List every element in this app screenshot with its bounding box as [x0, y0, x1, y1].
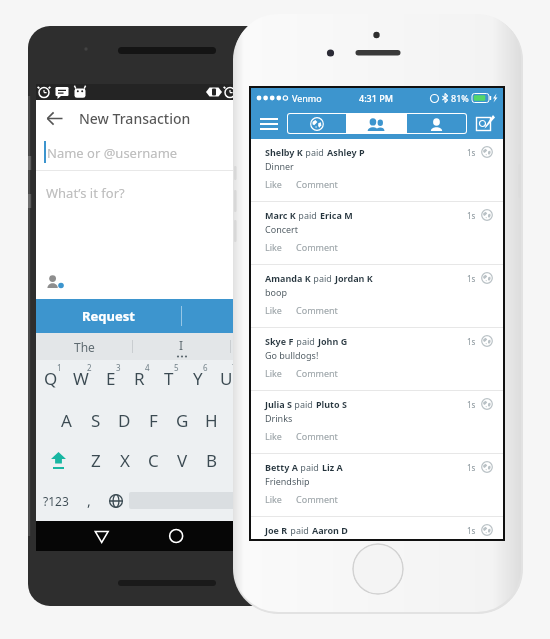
staticText: Q [44, 367, 58, 390]
button[interactable]: Marc K [251, 202, 503, 264]
button[interactable]: Z [81, 440, 110, 480]
button[interactable]: Request [36, 299, 181, 333]
staticText: 7 [232, 362, 237, 373]
button[interactable]: Comment [296, 493, 338, 505]
staticText: Comment [296, 493, 338, 505]
button[interactable]: H [197, 400, 226, 440]
staticText: Erica M [320, 209, 353, 221]
staticText: Pay [243, 307, 267, 325]
staticText: Aaron D [312, 524, 348, 536]
button[interactable]: G [168, 400, 197, 440]
staticText: W [73, 367, 89, 390]
staticText: H [205, 409, 218, 432]
staticText: Comment [296, 367, 338, 379]
staticText: B [206, 449, 218, 472]
button[interactable]: 8 [241, 360, 270, 400]
button[interactable]: Add people [47, 274, 65, 290]
button[interactable]: Delete [284, 440, 328, 480]
button[interactable]: 7 [212, 360, 241, 400]
button[interactable]: K [255, 400, 284, 440]
staticText: 1s [467, 525, 476, 536]
button[interactable]: X [110, 440, 139, 480]
button[interactable]: 9 [270, 360, 299, 400]
button[interactable]: B [197, 440, 226, 480]
button[interactable]: Amanda K [251, 265, 503, 327]
button[interactable]: L [284, 400, 313, 440]
button[interactable]: Shelby K [251, 139, 503, 201]
button[interactable]: S [81, 400, 110, 440]
button[interactable]: 5 [154, 360, 183, 400]
button[interactable]: Back [36, 100, 72, 136]
button[interactable]: F [139, 400, 168, 440]
button[interactable]: V [168, 440, 197, 480]
button[interactable]: Joe R [251, 517, 503, 539]
button[interactable]: Shift [36, 440, 81, 480]
button[interactable]: Skye F [251, 328, 503, 390]
button[interactable]: Like [265, 367, 282, 379]
button[interactable]: Like [265, 430, 282, 442]
staticText: G [176, 409, 189, 432]
staticText: ?123 [43, 493, 69, 509]
button[interactable]: Like [265, 241, 282, 253]
button[interactable]: Comment [296, 304, 338, 316]
button[interactable]: Like [265, 493, 282, 505]
staticText: Pluto S [316, 398, 347, 410]
staticText: paid [303, 146, 327, 158]
button[interactable]: A [52, 400, 81, 440]
button[interactable]: Menu [251, 108, 287, 139]
button[interactable]: Julia S [251, 391, 503, 453]
button[interactable]: Betty A [251, 454, 503, 516]
button[interactable]: 0 [299, 360, 328, 400]
button[interactable]: Home [352, 543, 404, 595]
staticText: D [118, 409, 131, 432]
button[interactable] [274, 480, 328, 521]
button[interactable]: I [133, 333, 230, 360]
staticText: 1s [467, 462, 476, 473]
button[interactable]: ?123 [36, 480, 75, 521]
button[interactable]: Comment [296, 178, 338, 190]
staticText: V [177, 449, 188, 472]
button[interactable]: Comment [296, 241, 338, 253]
button[interactable]: D [110, 400, 139, 440]
staticText: 8 [261, 362, 266, 373]
button[interactable]: J [226, 400, 255, 440]
button[interactable]: 1 [36, 360, 66, 400]
staticText: paid [296, 209, 320, 221]
staticText: 2 [87, 362, 92, 373]
button[interactable]: New payment [467, 108, 503, 139]
staticText: Name or @username [47, 144, 178, 162]
button[interactable]: Global feed [288, 114, 346, 133]
staticText: paid [311, 272, 335, 284]
button[interactable]: 4 [125, 360, 154, 400]
button[interactable]: Space [129, 492, 274, 509]
staticText: S [91, 409, 101, 432]
button[interactable]: C [139, 440, 168, 480]
button[interactable]: Friends feed [347, 114, 406, 133]
button[interactable]: 2 [66, 360, 96, 400]
button[interactable]: , [75, 480, 102, 521]
staticText: M [262, 449, 278, 472]
staticText: I [179, 337, 184, 353]
button[interactable]: Comment [296, 430, 338, 442]
staticText: 4:31 PM [359, 92, 393, 104]
button[interactable]: Language [102, 480, 129, 521]
button[interactable]: N [226, 440, 255, 480]
button[interactable]: Comment [296, 367, 338, 379]
button[interactable]: The [36, 333, 132, 360]
button[interactable] [231, 333, 328, 360]
button[interactable]: 3 [96, 360, 125, 400]
button[interactable]: My feed [407, 114, 466, 133]
staticText: paid [288, 524, 312, 536]
staticText: U [220, 367, 233, 390]
staticText: Liz A [322, 461, 343, 473]
button[interactable]: 6 [183, 360, 212, 400]
button[interactable]: Back [36, 100, 328, 136]
button[interactable]: M [255, 440, 284, 480]
staticText: , [87, 491, 91, 510]
button[interactable]: Like [265, 178, 282, 190]
button[interactable]: Pay [182, 299, 328, 333]
button[interactable]: Like [265, 304, 282, 316]
staticText: Skye F [265, 335, 294, 347]
